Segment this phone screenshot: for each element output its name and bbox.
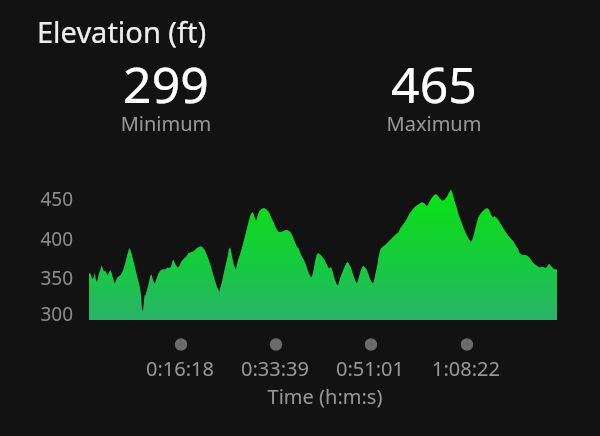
staticText: 0:16:18 xyxy=(120,355,240,382)
staticText: 0:51:01 xyxy=(310,355,430,382)
staticText: 0:33:39 xyxy=(215,355,335,382)
staticText: 299 xyxy=(76,50,256,118)
button[interactable]: 465 xyxy=(344,50,524,132)
staticText: 450 xyxy=(3,186,73,212)
staticText: Time (h:m:s) xyxy=(225,383,425,410)
staticText: 465 xyxy=(344,50,524,118)
staticText: Maximum xyxy=(344,110,524,137)
staticText: 300 xyxy=(3,301,73,327)
button[interactable]: 299 xyxy=(76,50,256,132)
staticText: Minimum xyxy=(76,110,256,137)
staticText: Elevation (ft) xyxy=(37,12,207,51)
staticText: 350 xyxy=(3,265,73,291)
button[interactable]: Elevation (ft) xyxy=(24,6,284,50)
button[interactable]: Elevation chart xyxy=(89,186,557,321)
staticText: 1:08:22 xyxy=(406,355,526,382)
staticText: 400 xyxy=(3,226,73,252)
